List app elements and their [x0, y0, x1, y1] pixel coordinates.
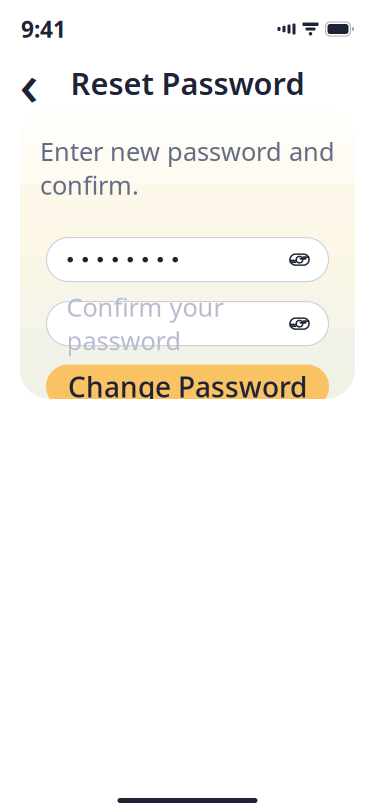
button[interactable]: Change Password: [46, 365, 329, 409]
button[interactable]: Back: [9, 63, 49, 103]
button[interactable]: Show password: [279, 240, 319, 280]
staticText: Confirm your password: [66, 290, 223, 357]
staticText: Reset Password: [70, 63, 304, 103]
staticText: Enter new password and confirm.: [40, 134, 335, 202]
staticText: ‹: [19, 44, 38, 122]
staticText: 9:41: [21, 14, 66, 44]
staticText: Change Password: [68, 368, 307, 405]
button[interactable]: Show confirm password: [279, 304, 319, 344]
